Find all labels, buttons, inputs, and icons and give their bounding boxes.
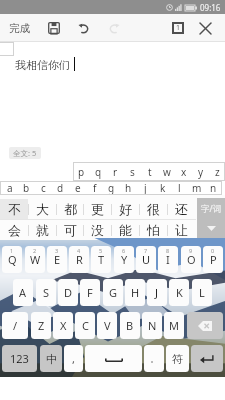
button[interactable]: V: [97, 312, 117, 339]
staticText: G: [109, 285, 118, 300]
staticText: 可: [64, 222, 77, 238]
button[interactable]: 中: [40, 345, 62, 372]
button[interactable]: B: [120, 312, 140, 339]
button[interactable]: q: [90, 162, 107, 181]
button[interactable]: Space: [85, 345, 142, 372]
button[interactable]: P: [203, 246, 223, 273]
staticText: E: [54, 252, 61, 267]
button[interactable]: A: [13, 279, 33, 306]
staticText: 中: [46, 352, 57, 366]
button[interactable]: 会: [0, 220, 28, 240]
button[interactable]: Redo: [104, 18, 124, 38]
button[interactable]: 还: [167, 199, 195, 219]
button[interactable]: W: [25, 246, 45, 273]
staticText: D: [64, 285, 73, 300]
staticText: 5: [99, 247, 103, 254]
staticText: g: [108, 181, 115, 195]
button[interactable]: r: [107, 162, 124, 181]
button[interactable]: a: [1, 181, 18, 195]
button[interactable]: w: [158, 162, 175, 181]
button[interactable]: 。: [144, 345, 164, 372]
staticText: 符: [172, 352, 183, 366]
button[interactable]: Backspace: [187, 312, 223, 339]
staticText: 123: [10, 351, 29, 366]
button[interactable]: d: [52, 181, 69, 195]
staticText: Q: [8, 252, 17, 267]
button[interactable]: b: [18, 181, 35, 195]
button[interactable]: t: [141, 162, 158, 181]
button[interactable]: e: [69, 181, 86, 195]
button[interactable]: I: [158, 246, 178, 273]
button[interactable]: C: [75, 312, 95, 339]
button[interactable]: Enter: [191, 345, 223, 372]
button[interactable]: D: [58, 279, 78, 306]
button[interactable]: Page count: [168, 18, 188, 38]
button[interactable]: E: [47, 246, 67, 273]
button[interactable]: 符: [166, 345, 189, 372]
button[interactable]: K: [169, 279, 189, 306]
button[interactable]: 大: [28, 199, 56, 219]
button[interactable]: 不: [0, 199, 28, 219]
staticText: 。: [150, 353, 159, 364]
button[interactable]: M: [164, 312, 184, 339]
button[interactable]: /: [2, 312, 28, 339]
button[interactable]: 让: [167, 220, 195, 240]
button[interactable]: 好: [111, 199, 139, 219]
button[interactable]: 更: [83, 199, 111, 219]
button[interactable]: Undo: [74, 18, 94, 38]
button[interactable]: 123: [2, 345, 37, 372]
button[interactable]: j: [137, 181, 154, 195]
staticText: K: [176, 285, 183, 300]
button[interactable]: F: [80, 279, 100, 306]
button[interactable]: H: [125, 279, 145, 306]
staticText: R: [76, 252, 83, 267]
button[interactable]: J: [147, 279, 167, 306]
button[interactable]: Save: [44, 18, 64, 38]
button[interactable]: L: [192, 279, 212, 306]
button[interactable]: z: [209, 162, 225, 181]
staticText: 没: [91, 222, 104, 238]
button[interactable]: O: [181, 246, 201, 273]
button[interactable]: G: [103, 279, 123, 306]
button[interactable]: 完成: [9, 22, 30, 35]
button[interactable]: Q: [2, 246, 22, 273]
button[interactable]: Y: [114, 246, 134, 273]
button[interactable]: 就: [28, 220, 56, 240]
staticText: C: [82, 318, 89, 333]
button[interactable]: y: [192, 162, 209, 181]
staticText: t: [148, 165, 152, 179]
button[interactable]: 怕: [139, 220, 167, 240]
button[interactable]: 可: [56, 220, 84, 240]
button[interactable]: h: [120, 181, 137, 195]
button[interactable]: U: [136, 246, 156, 273]
button[interactable]: N: [142, 312, 162, 339]
button[interactable]: m: [188, 181, 205, 195]
button[interactable]: s: [124, 162, 141, 181]
button[interactable]: 字/词: [197, 198, 225, 238]
button[interactable]: 很: [139, 199, 167, 219]
button[interactable]: 能: [111, 220, 139, 240]
button[interactable]: ,: [64, 345, 83, 372]
button[interactable]: n: [205, 181, 222, 195]
button[interactable]: X: [53, 312, 73, 339]
button[interactable]: 没: [83, 220, 111, 240]
button[interactable]: Close: [195, 18, 215, 38]
staticText: 9: [189, 247, 193, 254]
button[interactable]: f: [86, 181, 103, 195]
staticText: 好: [119, 201, 132, 217]
button[interactable]: R: [69, 246, 89, 273]
staticText: 1: [10, 247, 14, 254]
button[interactable]: c: [35, 181, 52, 195]
button[interactable]: k: [154, 181, 171, 195]
staticText: s: [130, 165, 135, 179]
staticText: Z: [38, 318, 45, 333]
button[interactable]: p: [73, 162, 90, 181]
staticText: 很: [147, 201, 160, 217]
button[interactable]: 都: [56, 199, 84, 219]
button[interactable]: S: [36, 279, 56, 306]
button[interactable]: g: [103, 181, 120, 195]
button[interactable]: x: [175, 162, 192, 181]
button[interactable]: Z: [31, 312, 51, 339]
button[interactable]: T: [91, 246, 111, 273]
button[interactable]: l: [171, 181, 188, 195]
